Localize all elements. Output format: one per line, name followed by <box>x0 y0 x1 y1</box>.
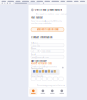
staticText: Didn't get the code? <box>31 60 47 62</box>
staticText: 555 0100 <box>42 50 50 53</box>
button[interactable]: Search <box>38 88 47 95</box>
button[interactable]: Orders <box>48 88 57 95</box>
staticText: Contact information <box>31 36 52 39</box>
button[interactable]: Home <box>29 88 38 95</box>
staticText: Verify your phone number <box>34 8 62 11</box>
staticText: Send verification code <box>36 28 58 31</box>
staticText: number you provide below. <box>31 22 51 24</box>
staticText: Resend verification code <box>31 62 52 65</box>
button[interactable]: Account <box>57 88 66 95</box>
staticText: We need to confirm your contact <box>36 13 68 15</box>
staticText: jane@example.com <box>32 56 49 58</box>
staticText: A one-time code will be sent by SMS to t… <box>31 20 62 22</box>
staticText: Complete the challenge to continue <box>31 66 57 68</box>
staticText: Enter the code <box>31 75 43 77</box>
staticText: +1 <box>32 50 34 53</box>
staticText: Email <box>31 54 35 56</box>
staticText: Full name <box>31 42 38 44</box>
staticText: Your number <box>31 16 43 19</box>
staticText: Jane Doe <box>32 45 40 47</box>
staticText: Security check <box>31 67 43 69</box>
button[interactable]: Send verification code <box>31 27 64 32</box>
staticText: Phone <box>31 48 36 50</box>
staticText: By continuing you agree to the terms <box>37 84 65 86</box>
